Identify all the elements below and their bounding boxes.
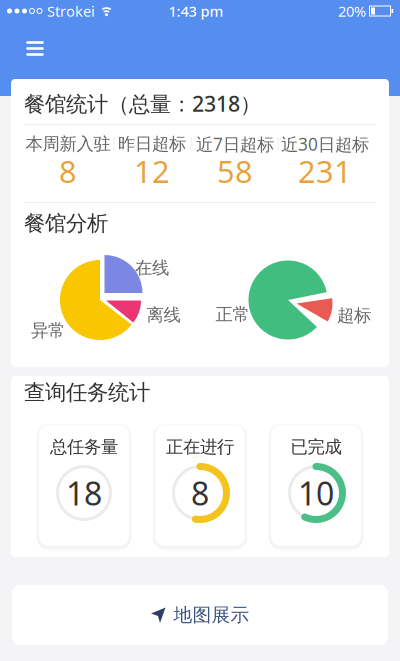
- staticText: 查询任务统计: [24, 379, 150, 406]
- staticText: Strokei: [47, 1, 95, 21]
- staticText: 昨日超标: [118, 133, 186, 155]
- button[interactable]: Menu: [15, 30, 55, 66]
- staticText: 已完成: [290, 436, 341, 458]
- staticText: 餐馆统计（总量：2318）: [24, 89, 261, 118]
- staticText: 8: [191, 472, 209, 514]
- staticText: 近7日超标: [196, 132, 274, 155]
- staticText: 1:43 pm: [168, 1, 223, 21]
- staticText: 231: [298, 151, 352, 191]
- staticText: 在线: [135, 257, 169, 279]
- staticText: 正在进行: [166, 436, 234, 458]
- staticText: 离线: [146, 304, 180, 326]
- staticText: 10: [298, 472, 334, 514]
- staticText: 超标: [337, 305, 371, 326]
- staticText: 正常: [215, 304, 249, 325]
- staticText: 餐馆分析: [24, 210, 108, 237]
- staticText: 8: [59, 151, 77, 191]
- staticText: 20%: [338, 1, 366, 21]
- staticText: 12: [134, 151, 170, 191]
- button[interactable]: 地图展示: [12, 585, 388, 645]
- staticText: 近30日超标: [281, 132, 369, 155]
- staticText: 异常: [31, 320, 65, 341]
- staticText: 18: [66, 472, 102, 514]
- staticText: 58: [217, 151, 253, 191]
- staticText: 本周新入驻: [25, 133, 110, 155]
- staticText: 地图展示: [173, 603, 249, 626]
- staticText: 总任务量: [50, 436, 118, 458]
